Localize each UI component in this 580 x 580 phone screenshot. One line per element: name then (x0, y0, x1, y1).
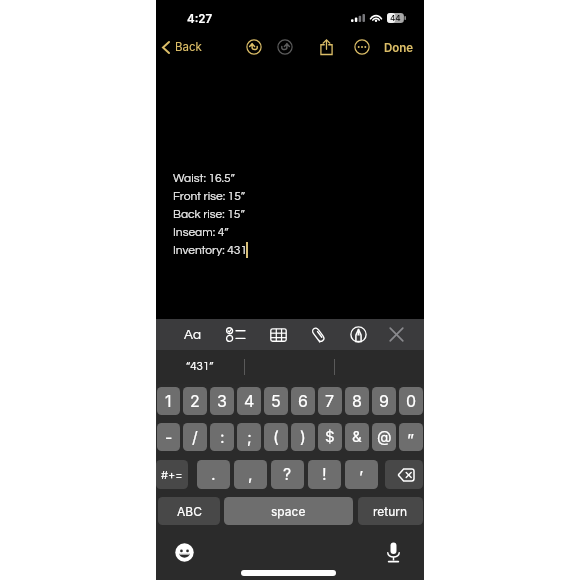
staticText: ) (300, 427, 306, 446)
button[interactable]: . (197, 460, 230, 489)
button[interactable]: ! (308, 460, 341, 489)
button[interactable]: Text format (178, 319, 206, 350)
staticText: 0 (406, 391, 417, 410)
staticText: ’ (359, 467, 364, 486)
button[interactable]: More (351, 36, 373, 58)
staticText: 9 (379, 391, 389, 410)
button[interactable]: Table (264, 319, 292, 350)
button[interactable]: Close keyboard (382, 319, 410, 350)
button[interactable]: Back (159, 38, 206, 56)
staticText: 7 (325, 391, 335, 410)
staticText: @ (377, 427, 392, 445)
staticText: : (220, 427, 225, 446)
button[interactable]: 5 (264, 387, 288, 415)
staticText: 4 (244, 391, 255, 410)
staticText: 1 (165, 391, 172, 410)
button[interactable]: 6 (291, 387, 315, 415)
button[interactable]: Markup (344, 319, 372, 350)
staticText: Waist: 16.5” (173, 172, 235, 184)
staticText: / (192, 427, 198, 446)
staticText: . (211, 464, 216, 483)
button[interactable]: @ (372, 423, 396, 451)
staticText: Inventory: 431 (173, 244, 248, 256)
button[interactable]: Undo (243, 36, 265, 58)
button[interactable]: ) (291, 423, 315, 451)
staticText: 2 (190, 391, 200, 410)
button[interactable]: space (224, 497, 353, 525)
button[interactable]: Done (381, 39, 417, 57)
button[interactable]: ” (399, 423, 423, 451)
staticText: - (165, 427, 173, 446)
button[interactable]: 2 (183, 387, 207, 415)
button[interactable]: Dictate (387, 542, 400, 563)
staticText: ? (283, 464, 292, 483)
staticText: 8 (352, 391, 362, 410)
button[interactable]: : (210, 423, 234, 451)
staticText: 3 (217, 391, 227, 410)
button[interactable]: Share (315, 36, 337, 58)
button[interactable]: return (358, 497, 423, 525)
staticText: “431” (186, 361, 214, 373)
button[interactable]: ; (237, 423, 261, 451)
button[interactable]: 8 (345, 387, 369, 415)
button[interactable]: & (345, 423, 369, 451)
button[interactable]: #+= (156, 460, 188, 489)
staticText: 5 (271, 391, 281, 410)
button[interactable]: 7 (318, 387, 342, 415)
staticText: ! (322, 464, 327, 483)
button[interactable]: 1 (157, 387, 180, 415)
staticText: ( (273, 427, 279, 446)
button[interactable]: “431” (156, 350, 244, 384)
staticText: Front rise: 15” (173, 190, 246, 202)
button[interactable]: ? (271, 460, 304, 489)
staticText: ABC (177, 504, 202, 519)
button[interactable]: Waist: 16.5” (156, 169, 424, 259)
staticText: ; (247, 427, 252, 446)
staticText: Aa (184, 328, 201, 342)
staticText: Inseam: 4” (173, 226, 229, 238)
staticText: ” (407, 430, 415, 449)
button[interactable]: / (183, 423, 207, 451)
button[interactable]: Delete (385, 460, 423, 489)
button[interactable]: - (157, 423, 180, 451)
staticText: $ (325, 427, 335, 445)
staticText: 4:27 (187, 12, 213, 26)
button[interactable]: 9 (372, 387, 396, 415)
button[interactable]: ABC (158, 497, 220, 525)
button[interactable]: , (234, 460, 267, 489)
button[interactable]: Attach (304, 319, 332, 350)
button[interactable]: 4 (237, 387, 261, 415)
button[interactable]: Emoji (175, 543, 194, 562)
staticText: Back rise: 15” (173, 208, 245, 220)
button[interactable]: ( (264, 423, 288, 451)
staticText: #+= (161, 468, 183, 481)
button[interactable]: 0 (399, 387, 423, 415)
button[interactable]: Redo (274, 36, 296, 58)
button[interactable]: Checklist (221, 319, 249, 350)
staticText: Done (384, 41, 414, 55)
staticText: & (352, 427, 362, 445)
button[interactable]: ’ (345, 460, 378, 489)
button[interactable]: $ (318, 423, 342, 451)
staticText: , (248, 464, 253, 483)
staticText: Back (175, 40, 202, 54)
staticText: 6 (298, 391, 308, 410)
staticText: space (271, 504, 306, 519)
button[interactable]: 3 (210, 387, 234, 415)
staticText: 44 (390, 13, 401, 23)
staticText: return (373, 504, 408, 519)
